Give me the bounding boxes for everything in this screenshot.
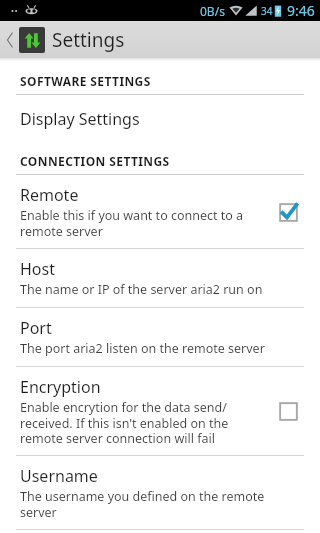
staticText: The port aria2 listen on the remote serv… [20, 340, 265, 357]
staticText: Enable encrytion for the data send/ rece… [20, 399, 229, 446]
button[interactable]: Checked [272, 196, 304, 228]
button[interactable]: Username [0, 456, 320, 529]
staticText: Display Settings [20, 108, 140, 130]
staticText: 9:46 [287, 1, 315, 20]
staticText: Encryption [20, 376, 101, 398]
button[interactable]: Display Settings [0, 95, 320, 143]
button[interactable]: Navigate up [0, 23, 51, 57]
staticText: Host [20, 258, 55, 280]
staticText: SOFTWARE SETTINGS [20, 73, 151, 89]
staticText: Port [20, 317, 52, 339]
staticText: Enable this if you want to connect to a … [20, 207, 244, 239]
staticText: The username you defined on the remote s… [20, 488, 304, 520]
button[interactable]: Unchecked [272, 395, 304, 427]
staticText: 0B/s [200, 3, 225, 19]
staticText: Settings [52, 27, 125, 53]
staticText: 34 [261, 4, 273, 18]
staticText: The name or IP of the server aria2 run o… [20, 281, 263, 298]
staticText: CONNECTION SETTINGS [20, 153, 170, 169]
button[interactable]: Encryption [0, 367, 320, 455]
button[interactable]: Host [0, 249, 320, 307]
button[interactable]: Port [0, 308, 320, 366]
staticText: Username [20, 465, 98, 487]
staticText: Remote [20, 184, 79, 206]
button[interactable]: Remote [0, 175, 320, 248]
